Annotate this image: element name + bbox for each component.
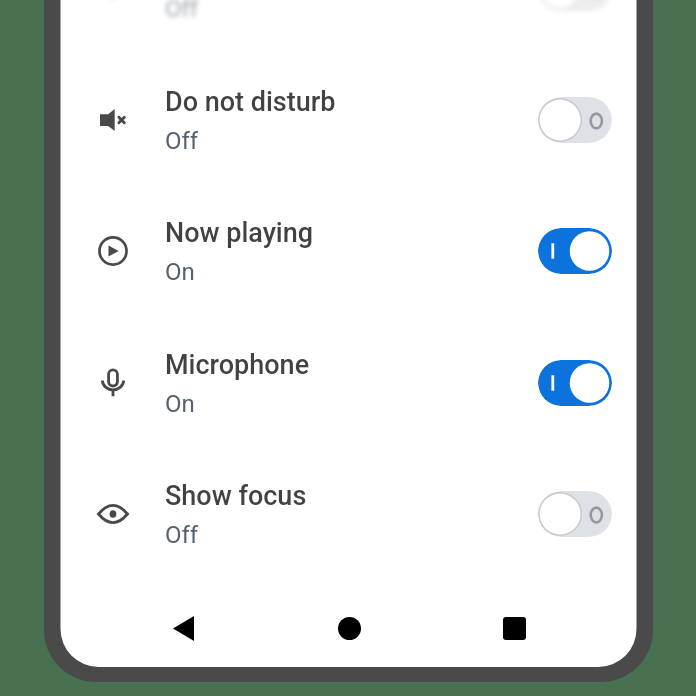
button[interactable]: Microphone toggle, On <box>538 360 612 406</box>
button[interactable]: Bluetooth <box>61 0 637 54</box>
button[interactable]: Back <box>151 598 215 658</box>
staticText: On <box>165 390 195 418</box>
button[interactable]: Recent apps <box>482 598 546 658</box>
staticText: Do not disturb <box>165 86 336 118</box>
staticText: Off <box>165 0 199 23</box>
staticText: Show focus <box>165 480 307 512</box>
button[interactable]: Now playing toggle, On <box>538 228 612 274</box>
button[interactable]: Do not disturb toggle, Off <box>538 97 612 143</box>
staticText: Off <box>165 521 199 549</box>
button[interactable]: Show focus toggle, Off <box>538 491 612 537</box>
button[interactable]: Now playing <box>61 185 637 317</box>
staticText: Now playing <box>165 217 314 249</box>
staticText: On <box>165 258 195 286</box>
button[interactable]: Home <box>317 598 381 658</box>
button[interactable]: Show focus <box>61 448 637 580</box>
button[interactable]: Bluetooth toggle, Off <box>538 0 612 11</box>
button[interactable]: Do not disturb <box>61 54 637 186</box>
staticText: Off <box>165 127 199 155</box>
button[interactable]: Microphone <box>61 317 637 449</box>
staticText: Microphone <box>165 349 310 381</box>
